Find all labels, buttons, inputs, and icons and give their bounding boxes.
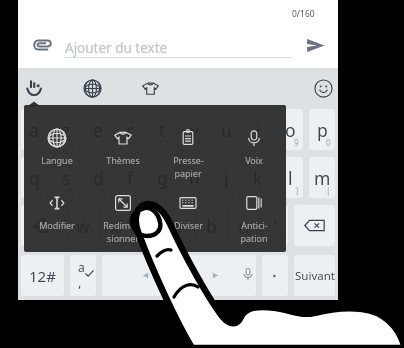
button[interactable]: Themes bbox=[133, 71, 167, 105]
button[interactable]: Clavier bbox=[17, 71, 51, 105]
button[interactable]: a bbox=[70, 255, 96, 296]
staticText: n bbox=[238, 214, 249, 238]
staticText: f bbox=[127, 166, 134, 190]
button[interactable]: l bbox=[277, 157, 303, 198]
button[interactable]: d bbox=[85, 157, 111, 198]
staticText: v bbox=[175, 214, 184, 238]
button[interactable]: Langue bbox=[75, 71, 109, 105]
button[interactable]: Redimen- bbox=[90, 170, 156, 235]
staticText: t bbox=[159, 118, 166, 142]
button[interactable]: x bbox=[102, 205, 128, 246]
button[interactable]: f bbox=[117, 157, 143, 198]
staticText: o bbox=[285, 118, 296, 142]
button[interactable]: Voix bbox=[221, 105, 286, 170]
staticText: 12# bbox=[29, 266, 56, 286]
staticText: a bbox=[29, 118, 39, 142]
staticText: Modifier bbox=[39, 219, 75, 231]
staticText: c bbox=[143, 214, 152, 238]
staticText: i bbox=[256, 118, 261, 142]
staticText: 0/160 bbox=[292, 8, 315, 20]
button[interactable]: a bbox=[21, 109, 47, 150]
staticText: x bbox=[110, 214, 120, 238]
button[interactable]: ' bbox=[262, 205, 288, 246]
staticText: p bbox=[317, 118, 328, 142]
button[interactable]: Suivant bbox=[294, 255, 335, 296]
button[interactable]: Envoyer bbox=[298, 28, 332, 62]
button[interactable] bbox=[262, 255, 288, 296]
button[interactable]: i bbox=[245, 109, 271, 150]
button[interactable]: Espace bbox=[102, 255, 256, 296]
button[interactable]: c bbox=[134, 205, 160, 246]
staticText: a bbox=[78, 259, 85, 275]
staticText: e bbox=[93, 118, 103, 142]
button[interactable]: Antici- bbox=[221, 170, 286, 235]
button[interactable]: p bbox=[309, 109, 335, 150]
staticText: Presse- bbox=[173, 154, 204, 166]
staticText: Diviser bbox=[174, 219, 203, 231]
button[interactable]: z bbox=[53, 109, 79, 150]
staticText: Voix bbox=[245, 154, 263, 166]
button[interactable]: Emoji bbox=[306, 71, 340, 105]
button[interactable]: b bbox=[198, 205, 224, 246]
button[interactable]: Presse- bbox=[155, 105, 221, 170]
button[interactable]: h bbox=[181, 157, 207, 198]
staticText: u bbox=[221, 118, 232, 142]
staticText: , bbox=[78, 273, 82, 291]
button[interactable]: Thèmes bbox=[90, 105, 156, 170]
button[interactable]: Langue bbox=[24, 105, 90, 170]
button[interactable]: o bbox=[277, 109, 303, 150]
button[interactable]: m bbox=[309, 157, 335, 198]
button[interactable]: Modifier bbox=[24, 170, 90, 235]
staticText: d bbox=[93, 166, 104, 190]
button[interactable]: r bbox=[117, 109, 143, 150]
staticText: Suivant bbox=[295, 268, 335, 284]
staticText: sionner bbox=[107, 232, 139, 244]
button[interactable]: Joindre un fichier bbox=[28, 31, 56, 59]
button[interactable]: k bbox=[245, 157, 271, 198]
staticText: ? bbox=[248, 233, 252, 244]
button[interactable]: v bbox=[166, 205, 192, 246]
button[interactable]: y bbox=[181, 109, 207, 150]
button[interactable]: n bbox=[230, 205, 256, 246]
staticText: Langue bbox=[41, 154, 73, 166]
button[interactable]: 12# bbox=[21, 255, 64, 296]
button[interactable]: q bbox=[21, 157, 47, 198]
staticText: j bbox=[224, 166, 229, 190]
staticText: r bbox=[126, 118, 134, 142]
button[interactable]: Diviser bbox=[155, 170, 221, 235]
button[interactable]: s bbox=[53, 157, 79, 198]
staticText: Redimen- bbox=[103, 219, 144, 231]
staticText: h bbox=[189, 166, 200, 190]
staticText: q bbox=[29, 166, 40, 190]
staticText: ) bbox=[296, 185, 299, 196]
button[interactable]: g bbox=[149, 157, 175, 198]
staticText: " bbox=[120, 233, 124, 244]
staticText: papier bbox=[174, 167, 202, 179]
button[interactable]: Supprimer bbox=[294, 205, 335, 246]
staticText: Ajouter du texte bbox=[65, 39, 168, 57]
staticText: y bbox=[190, 118, 199, 142]
button[interactable]: Majuscule bbox=[21, 205, 64, 246]
staticText: b bbox=[206, 214, 217, 238]
button[interactable]: w bbox=[70, 205, 96, 246]
